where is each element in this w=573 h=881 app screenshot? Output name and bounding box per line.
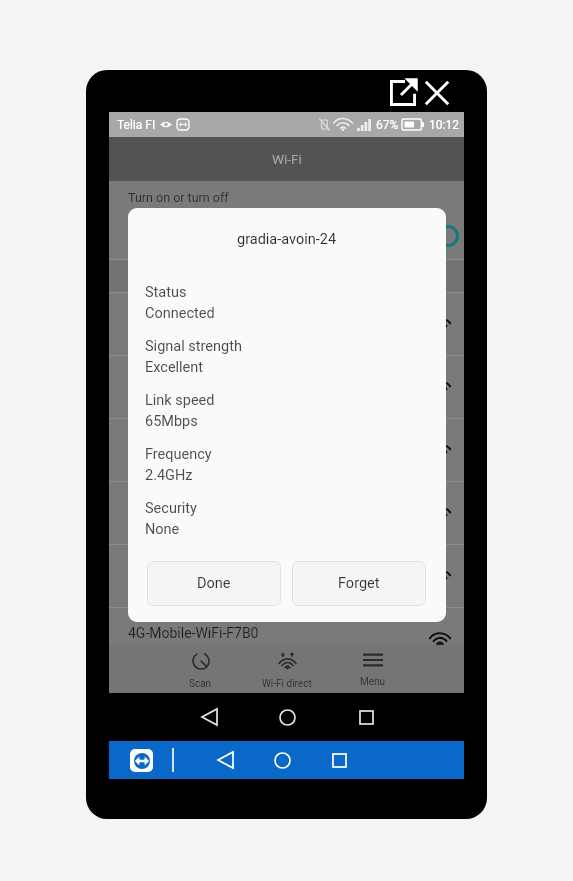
staticText: 4G-Mobile-WiFi-F7B0	[128, 625, 259, 641]
button[interactable]: Recent apps	[347, 698, 385, 736]
button[interactable]: Forget	[292, 561, 426, 606]
button[interactable]: Wi-Fi direct	[257, 645, 317, 693]
staticText: None	[145, 521, 180, 538]
button[interactable]: Back	[190, 698, 228, 736]
staticText: gradia-avoin-24	[128, 310, 224, 326]
button[interactable]: JAMK-guest	[109, 544, 464, 607]
button[interactable]: Recent apps	[320, 741, 358, 779]
staticText: Turn on or turn off	[128, 190, 229, 205]
button[interactable]: 4G-Mobile-WiFi-F7B0	[109, 607, 464, 645]
staticText: 2.4GHz	[145, 467, 193, 484]
staticText: Done	[197, 575, 231, 592]
button[interactable]: Open in new window	[386, 76, 420, 110]
staticText: Forget	[338, 575, 380, 592]
button[interactable]: Turn on or turn off	[109, 181, 464, 259]
button[interactable]: Home	[268, 698, 306, 736]
staticText: Wi-Fi direct	[262, 678, 312, 690]
button[interactable]: gradia-avoin-24	[109, 292, 464, 355]
staticText: Menu	[360, 676, 386, 688]
staticText: 10:12	[429, 118, 459, 132]
button[interactable]: Scan	[170, 645, 230, 693]
button[interactable]: gradia	[109, 355, 464, 418]
staticText: Frequency	[145, 446, 212, 463]
button[interactable]: Menu	[343, 645, 403, 693]
button[interactable]: Home	[263, 741, 301, 779]
staticText: 65Mbps	[145, 413, 198, 430]
button[interactable]: TeamViewer	[130, 749, 153, 772]
staticText: 67%	[376, 118, 399, 132]
staticText: Connected	[145, 305, 215, 322]
staticText: Security	[145, 500, 197, 517]
staticText: Telia FI	[117, 118, 156, 132]
staticText: eduroam	[128, 436, 184, 452]
staticText: Scan	[189, 678, 212, 690]
staticText: Wi-Fi	[272, 151, 302, 167]
staticText: gradia-avoin-24	[237, 231, 337, 248]
button[interactable]: gradia-5G	[109, 481, 464, 544]
staticText: Link speed	[145, 392, 215, 409]
button[interactable]: eduroam	[109, 418, 464, 481]
staticText: Signal strength	[145, 338, 242, 355]
staticText: gradia-5G	[128, 499, 189, 515]
button[interactable]: Close	[420, 76, 454, 110]
button[interactable]: Done	[147, 561, 281, 606]
staticText: Excellent	[145, 359, 204, 376]
button[interactable]: Back	[206, 741, 244, 779]
staticText: JAMK-guest	[128, 562, 204, 578]
staticText: Status	[145, 284, 187, 301]
